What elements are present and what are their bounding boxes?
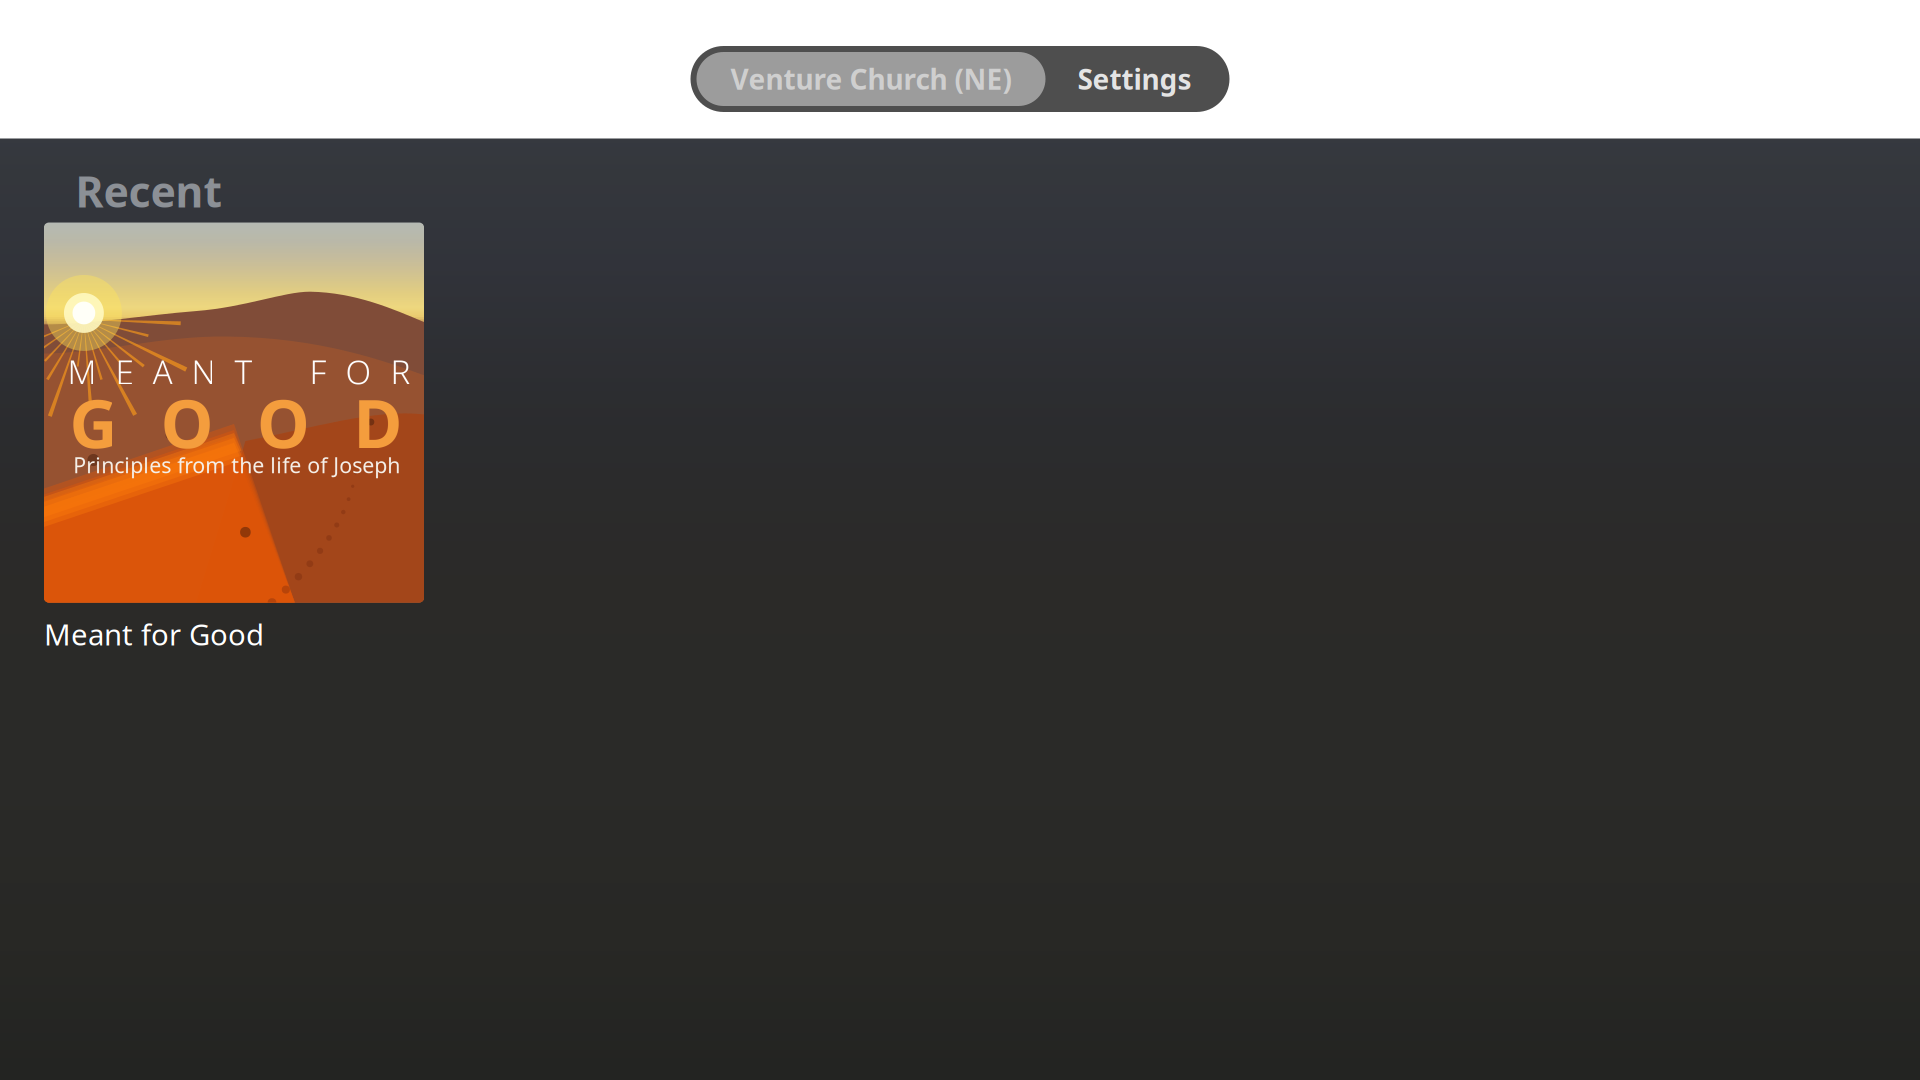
staticText: Settings [1077,60,1191,98]
staticText: R [390,349,410,394]
staticText: Meant for Good [44,614,264,653]
staticText: Venture Church (NE) [730,60,1011,98]
button[interactable]: Settings [1045,52,1223,106]
staticText: Principles from the life of Joseph [73,451,400,479]
button[interactable]: M [44,222,424,653]
staticText: T [234,349,252,394]
staticText: N [191,349,215,394]
staticText: O [161,378,214,467]
staticText: D [353,378,402,467]
staticText: M [67,349,96,394]
button[interactable]: Venture Church (NE) [696,52,1045,106]
staticText: F [309,349,326,394]
staticText: G [69,378,117,467]
staticText: A [152,349,172,394]
staticText: E [115,349,133,394]
staticText: O [257,378,310,467]
staticText: O [345,349,371,394]
staticText: Recent [75,163,222,219]
